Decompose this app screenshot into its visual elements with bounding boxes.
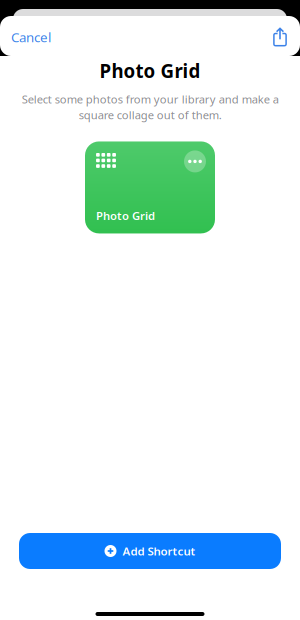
staticText: Add Shortcut (122, 543, 195, 559)
button[interactable]: Add Shortcut (19, 533, 281, 569)
staticText: Select some photos from your library and… (21, 91, 278, 122)
staticText: Cancel (11, 28, 51, 46)
button[interactable]: Share (262, 18, 300, 51)
button[interactable]: More options (184, 150, 206, 172)
staticText: Photo Grid (96, 208, 155, 223)
button[interactable]: Cancel (0, 17, 62, 53)
staticText: Photo Grid (99, 58, 200, 83)
